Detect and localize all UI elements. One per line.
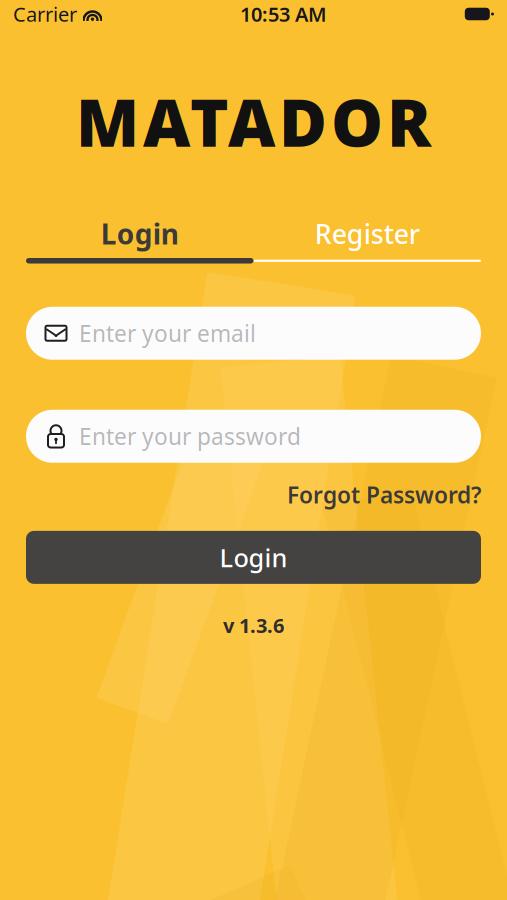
staticText: v 1.3.6	[223, 612, 284, 638]
staticText: 10:53 AM	[240, 1, 327, 27]
button[interactable]: Enter your email	[26, 307, 481, 360]
button[interactable]: Register	[253, 218, 481, 250]
staticText: Login	[219, 540, 287, 574]
staticText: Login	[101, 215, 179, 252]
staticText: MATADOR	[76, 78, 431, 165]
button[interactable]: Enter your password	[26, 410, 481, 463]
staticText: Enter your email	[79, 318, 256, 348]
button[interactable]: Login	[26, 218, 253, 250]
staticText: Register	[315, 216, 420, 251]
button[interactable]: Login	[26, 531, 481, 584]
button[interactable]: Forgot Password?	[287, 480, 481, 510]
staticText: Carrier	[13, 1, 77, 27]
staticText: Forgot Password?	[287, 480, 481, 510]
staticText: Enter your password	[79, 421, 301, 451]
